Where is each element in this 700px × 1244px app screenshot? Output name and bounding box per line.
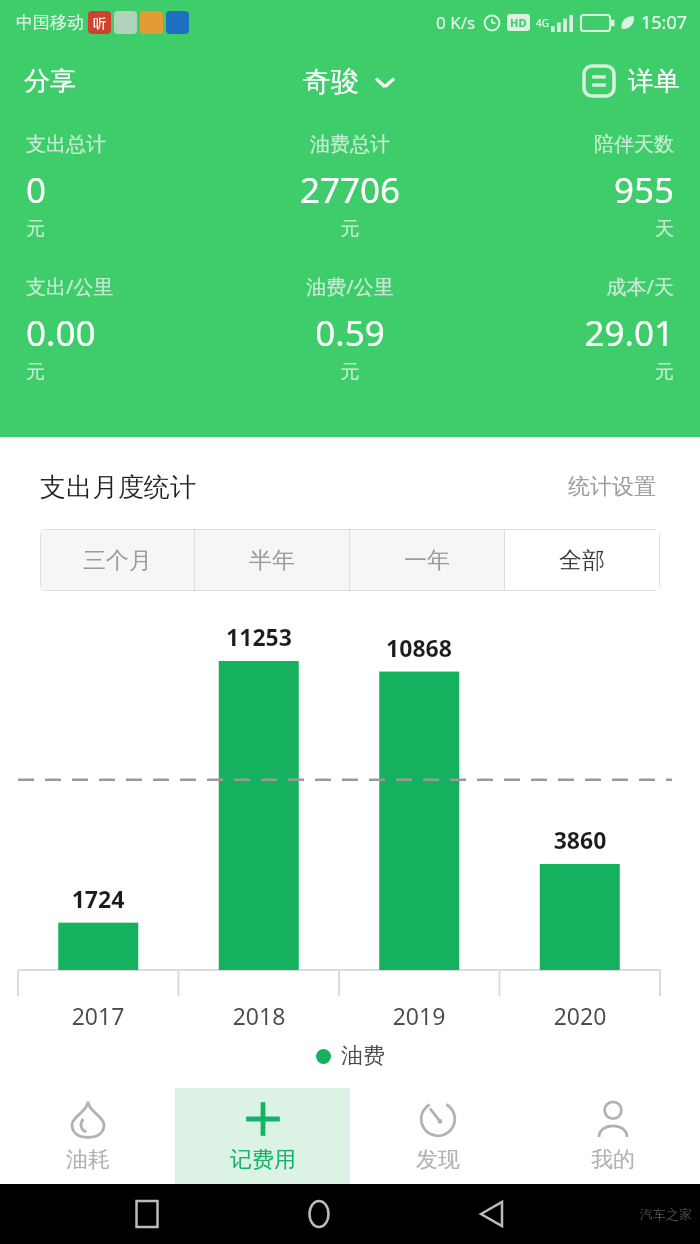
staticText: 听	[93, 15, 106, 31]
staticText: 一年	[404, 546, 450, 575]
staticText: 1724	[23, 883, 173, 914]
button[interactable]: 油耗	[0, 1088, 175, 1184]
staticText: 详单	[628, 65, 680, 98]
staticText: 2019	[344, 1000, 494, 1031]
staticText: 油费	[341, 1042, 385, 1070]
staticText: 10868	[344, 632, 494, 663]
staticText: 油费总计	[242, 132, 458, 157]
staticText: 支出/公里	[26, 273, 242, 300]
staticText: 元	[242, 217, 458, 241]
staticText: 元	[26, 217, 242, 241]
staticText: 元	[242, 360, 458, 384]
staticText: 记费用	[230, 1146, 296, 1174]
staticText: 油耗	[66, 1146, 110, 1174]
staticText: 半年	[249, 546, 295, 575]
staticText: 元	[458, 360, 674, 384]
staticText: 27706	[242, 166, 458, 214]
staticText: 分享	[24, 65, 76, 98]
staticText: 3860	[505, 824, 655, 855]
staticText: 2020	[505, 1000, 655, 1031]
staticText: 15:07	[641, 10, 688, 35]
staticText: 我的	[591, 1146, 635, 1174]
staticText: 统计设置	[568, 473, 656, 501]
button[interactable]: 记费用	[175, 1088, 350, 1184]
staticText: 4G	[536, 16, 549, 30]
staticText: 0 K/s	[436, 11, 476, 34]
staticText: 0	[26, 166, 242, 214]
button[interactable]: Recents	[122, 1189, 172, 1239]
staticText: 2018	[184, 1000, 334, 1031]
staticText: 元	[26, 360, 242, 384]
button[interactable]: 详单	[576, 56, 686, 106]
button[interactable]: 全部	[505, 530, 659, 590]
staticText: 奇骏	[303, 64, 359, 99]
staticText: 11253	[184, 621, 334, 652]
button[interactable]: 分享	[14, 57, 86, 106]
staticText: 陪伴天数	[458, 132, 674, 157]
button[interactable]: 奇骏	[291, 56, 409, 107]
staticText: 油费/公里	[242, 273, 458, 300]
button[interactable]: 一年	[350, 530, 504, 590]
staticText: 成本/天	[458, 273, 674, 300]
staticText: 2017	[23, 1000, 173, 1031]
staticText: 汽车之家	[640, 1206, 692, 1222]
button[interactable]: 三个月	[41, 530, 194, 590]
staticText: 天	[458, 217, 674, 241]
button[interactable]: 我的	[525, 1088, 700, 1184]
staticText: 支出月度统计	[40, 471, 196, 504]
button[interactable]: 半年	[195, 530, 349, 590]
staticText: 0.00	[26, 309, 242, 357]
staticText: HD	[510, 15, 527, 30]
staticText: 三个月	[83, 546, 152, 575]
staticText: 0.59	[242, 309, 458, 357]
staticText: 29.01	[458, 309, 674, 357]
button[interactable]: 发现	[350, 1088, 525, 1184]
button[interactable]: Back	[467, 1189, 517, 1239]
button[interactable]: 统计设置	[564, 467, 660, 507]
staticText: 全部	[559, 546, 605, 575]
staticText: 发现	[416, 1146, 460, 1174]
staticText: 955	[458, 166, 674, 214]
button[interactable]: Home	[294, 1189, 344, 1239]
staticText: 中国移动	[16, 12, 84, 33]
staticText: 支出总计	[26, 132, 242, 157]
